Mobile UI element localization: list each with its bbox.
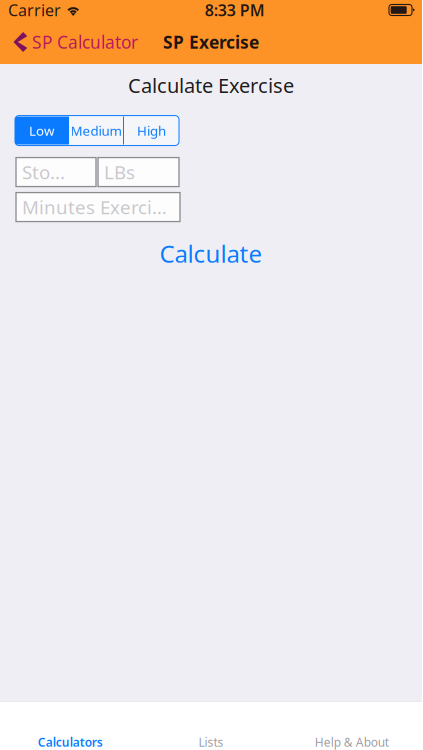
- staticText: SP Exercise: [163, 30, 259, 53]
- button[interactable]: Minutes Exercisi...: [16, 193, 180, 222]
- button[interactable]: Lists: [141, 701, 281, 750]
- button[interactable]: LBs: [98, 158, 179, 187]
- staticText: Lists: [198, 734, 223, 750]
- button[interactable]: Calculate: [0, 239, 422, 269]
- staticText: Calculators: [38, 734, 103, 750]
- button[interactable]: Low: [15, 117, 68, 145]
- staticText: Carrier: [8, 0, 61, 21]
- staticText: 8:33 PM: [205, 0, 265, 21]
- staticText: Help & About: [315, 734, 389, 750]
- staticText: SP Calculator: [32, 30, 138, 53]
- button[interactable]: Help & About: [281, 701, 422, 750]
- button[interactable]: Sto...: [16, 158, 96, 187]
- staticText: Calculate Exercise: [128, 72, 294, 99]
- button[interactable]: SP Calculator: [0, 20, 150, 64]
- button[interactable]: Medium: [69, 117, 123, 145]
- staticText: Medium: [70, 122, 121, 139]
- staticText: LBs: [104, 160, 135, 184]
- staticText: Minutes Exercisi...: [22, 195, 174, 219]
- staticText: Calculate: [159, 238, 262, 269]
- button[interactable]: High: [124, 117, 179, 145]
- staticText: Sto...: [22, 160, 65, 184]
- staticText: Low: [29, 122, 54, 139]
- staticText: High: [137, 122, 166, 139]
- button[interactable]: Calculators: [0, 701, 141, 750]
